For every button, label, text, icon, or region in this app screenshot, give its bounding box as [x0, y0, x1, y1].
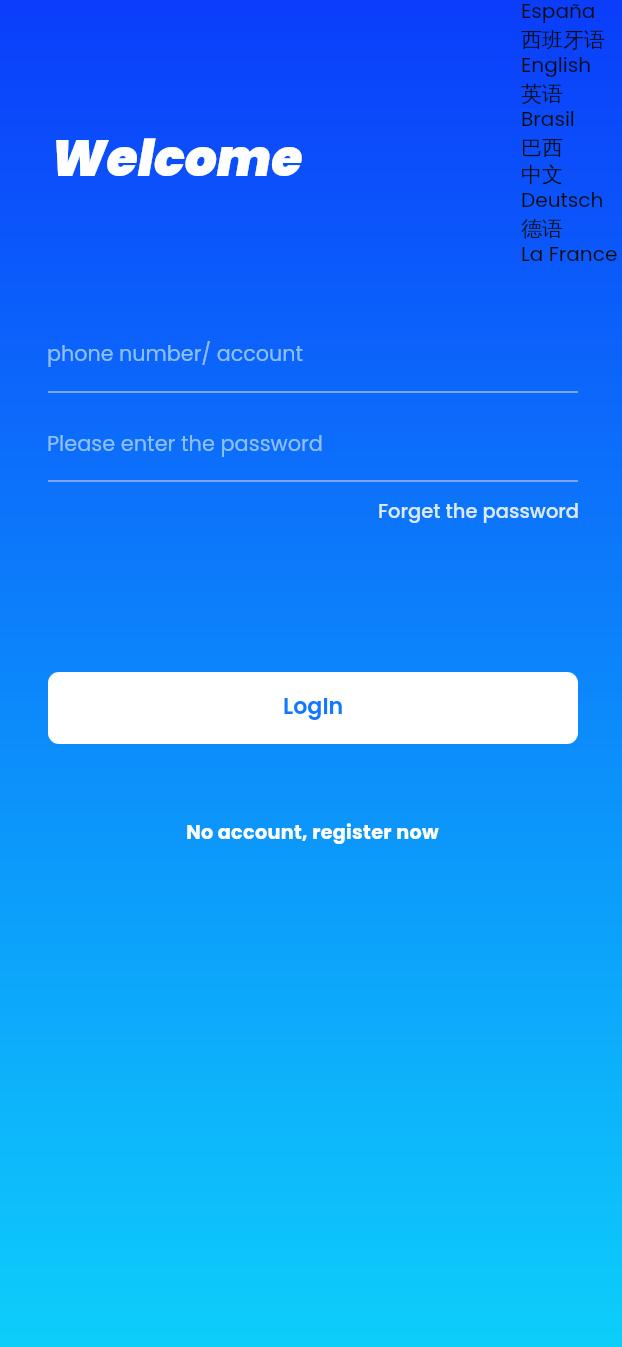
staticText: La France	[521, 240, 618, 267]
staticText: Please enter the password	[47, 429, 323, 458]
button[interactable]: Brasil	[521, 108, 622, 135]
staticText: España	[521, 0, 596, 24]
staticText: LogIn	[283, 691, 344, 722]
staticText: 英语	[521, 81, 563, 107]
button[interactable]: 巴西	[521, 135, 622, 162]
button[interactable]: LogIn	[48, 672, 578, 744]
button[interactable]: La France	[521, 243, 622, 270]
button[interactable]: 中文	[521, 162, 622, 189]
button[interactable]: English	[521, 54, 622, 81]
staticText: English	[521, 51, 591, 78]
button[interactable]: 英语	[521, 81, 622, 108]
staticText: Forget the password	[378, 498, 580, 525]
button[interactable]: No account, register now	[1, 815, 622, 849]
button[interactable]: 德语	[521, 216, 622, 243]
staticText: 巴西	[521, 135, 563, 161]
staticText: Brasil	[521, 105, 575, 132]
button[interactable]: phone number/ account	[48, 325, 578, 393]
staticText: 西班牙语	[521, 27, 605, 53]
staticText: 德语	[521, 216, 563, 242]
staticText: No account, register now	[186, 819, 439, 846]
button[interactable]: 西班牙语	[521, 27, 622, 54]
button[interactable]: Forget the password	[373, 493, 585, 529]
staticText: 中文	[521, 162, 563, 188]
button[interactable]: Please enter the password	[48, 415, 578, 483]
button[interactable]: Deutsch	[521, 189, 622, 216]
staticText: Deutsch	[521, 186, 604, 213]
staticText: phone number/ account	[47, 339, 304, 368]
staticText: Welcome	[51, 123, 303, 194]
button[interactable]: España	[521, 0, 622, 27]
